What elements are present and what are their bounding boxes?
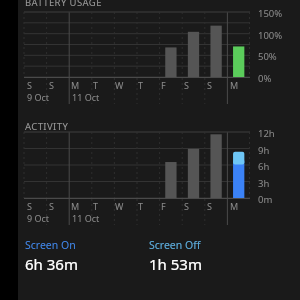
staticText: M [230, 200, 239, 212]
button[interactable]: Battery usage chart [18, 12, 250, 104]
staticText: 11 Oct [72, 91, 100, 103]
staticText: S [49, 79, 54, 91]
staticText: W [115, 200, 124, 212]
staticText: ACTIVITY [25, 120, 69, 132]
staticText: 0% [258, 72, 272, 85]
staticText: Screen Off [149, 238, 201, 252]
staticText: S [27, 79, 32, 91]
staticText: Screen On [25, 238, 76, 252]
staticText: 100% [258, 29, 283, 42]
button[interactable]: Screen On [18, 238, 143, 274]
staticText: T [93, 79, 99, 91]
staticText: 3h [258, 177, 270, 190]
button[interactable]: Screen Off [143, 238, 268, 274]
staticText: 0m [258, 193, 273, 206]
staticText: 6h [258, 160, 270, 173]
staticText: 50% [258, 50, 277, 63]
staticText: F [161, 79, 166, 91]
staticText: 9 Oct [27, 212, 50, 224]
staticText: T [93, 200, 99, 212]
staticText: 11 Oct [72, 212, 100, 224]
staticText: S [184, 200, 189, 212]
staticText: W [115, 79, 124, 91]
staticText: S [27, 200, 32, 212]
staticText: T [138, 79, 144, 91]
staticText: M [71, 200, 80, 212]
staticText: S [49, 200, 54, 212]
staticText: 150% [258, 7, 283, 20]
staticText: F [161, 200, 166, 212]
staticText: M [230, 79, 239, 91]
staticText: S [207, 200, 212, 212]
staticText: 6h 36m [25, 254, 78, 274]
staticText: S [207, 79, 212, 91]
staticText: 9 Oct [27, 91, 50, 103]
staticText: 1h 53m [149, 254, 202, 274]
button[interactable]: Activity chart [18, 132, 250, 225]
staticText: S [184, 79, 189, 91]
staticText: BATTERY USAGE [25, 0, 102, 8]
staticText: 9h [258, 144, 270, 157]
staticText: T [138, 200, 144, 212]
staticText: 12h [258, 127, 275, 140]
staticText: M [71, 79, 80, 91]
